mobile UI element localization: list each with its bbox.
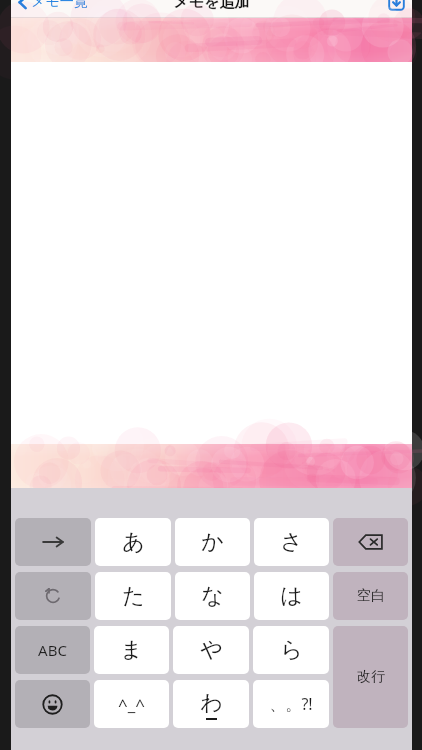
staticText: た	[122, 582, 145, 610]
staticText: さ	[280, 528, 303, 556]
button[interactable]: あ	[95, 518, 171, 566]
button[interactable]: ABC	[15, 626, 90, 674]
staticText: わ	[200, 689, 223, 717]
staticText: 空白	[357, 587, 385, 605]
button[interactable]: 、。?!	[253, 680, 329, 728]
button[interactable]: ま	[94, 626, 169, 674]
staticText: ま	[120, 636, 143, 664]
staticText: か	[201, 528, 224, 556]
staticText: 、。?!	[269, 693, 313, 715]
button[interactable]: わ	[173, 680, 249, 728]
button[interactable]: ら	[253, 626, 329, 674]
button[interactable]: Save	[380, 0, 412, 11]
button[interactable]: メモ一覧	[11, 0, 94, 11]
staticText: メモを追加	[173, 0, 250, 11]
button[interactable]: は	[254, 572, 329, 620]
staticText: 改行	[357, 668, 385, 686]
button[interactable]: た	[95, 572, 171, 620]
staticText: あ	[122, 528, 145, 556]
staticText: な	[201, 582, 224, 610]
button[interactable]: ^_^	[94, 680, 169, 728]
staticText: ^_^	[118, 693, 145, 716]
button[interactable]: 改行	[333, 626, 408, 728]
staticText: ら	[280, 636, 303, 664]
button[interactable]: さ	[254, 518, 329, 566]
button[interactable]: か	[175, 518, 250, 566]
staticText: や	[200, 636, 223, 664]
staticText: は	[280, 582, 303, 610]
button[interactable]: な	[175, 572, 250, 620]
button[interactable]: Undo	[15, 572, 91, 620]
staticText: メモ一覧	[31, 0, 88, 11]
button[interactable]: 空白	[333, 572, 408, 620]
button[interactable]: Emoji	[15, 680, 90, 728]
button[interactable]: Backspace	[333, 518, 408, 566]
staticText: ABC	[38, 640, 67, 660]
button[interactable]: や	[173, 626, 249, 674]
button[interactable]: →	[15, 518, 91, 566]
